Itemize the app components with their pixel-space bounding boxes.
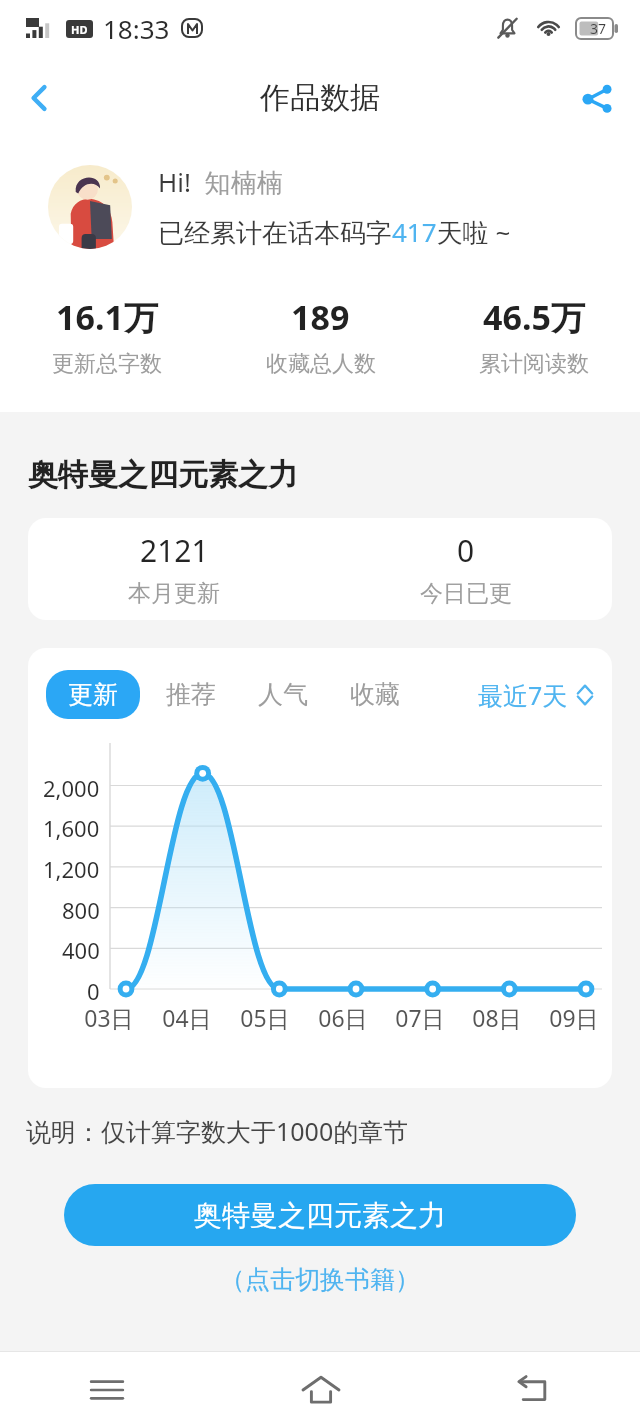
button[interactable]: Back xyxy=(427,1352,640,1428)
staticText: 189 xyxy=(291,294,350,340)
button[interactable]: 189 xyxy=(214,294,427,378)
staticText: 累计阅读数 xyxy=(479,350,589,378)
staticText: 奥特曼之四元素之力 xyxy=(28,456,298,494)
staticText: 04日 xyxy=(162,1002,212,1033)
button[interactable]: 人气 xyxy=(242,670,324,719)
button[interactable]: 46.5万 xyxy=(427,294,640,378)
staticText: 人气 xyxy=(258,679,308,710)
staticText: 推荐 xyxy=(166,679,216,710)
staticText: 1,600 xyxy=(43,813,100,843)
staticText: HD xyxy=(71,22,88,37)
button[interactable]: 0 xyxy=(320,530,612,608)
button[interactable]: 收藏 xyxy=(334,670,416,719)
button[interactable]: Back xyxy=(8,67,70,129)
staticText: 更新总字数 xyxy=(52,350,162,378)
button[interactable] xyxy=(48,165,132,249)
button[interactable]: Home xyxy=(214,1352,427,1428)
button[interactable]: 推荐 xyxy=(150,670,232,719)
staticText: 06日 xyxy=(318,1002,368,1033)
button[interactable]: Share xyxy=(566,67,628,129)
staticText: 2,000 xyxy=(43,773,100,803)
staticText: 18:33 xyxy=(103,11,170,46)
staticText: 说明：仅计算字数大于1000的章节 xyxy=(26,1114,409,1148)
button[interactable]: 16.1万 xyxy=(0,294,214,378)
staticText: 800 xyxy=(62,895,100,925)
button[interactable]: 奥特曼之四元素之力 xyxy=(64,1184,576,1246)
staticText: 16.1万 xyxy=(56,294,158,340)
staticText: 最近7天 xyxy=(478,678,568,712)
staticText: 奥特曼之四元素之力 xyxy=(194,1198,446,1233)
button[interactable]: 最近7天 xyxy=(478,678,594,712)
staticText: 46.5万 xyxy=(483,294,585,340)
staticText: 更新 xyxy=(68,679,118,710)
staticText: 05日 xyxy=(240,1002,290,1033)
staticText: 400 xyxy=(62,935,100,965)
staticText: Hi! 知楠楠 xyxy=(158,164,283,200)
button[interactable]: 2121 xyxy=(28,530,320,608)
button[interactable]: Recents xyxy=(0,1352,214,1428)
staticText: 0 xyxy=(87,976,100,1006)
staticText: 作品数据 xyxy=(260,79,380,117)
button[interactable]: 更新 xyxy=(46,670,140,719)
button[interactable]: （点击切换书籍） xyxy=(220,1264,420,1295)
staticText: 收藏 xyxy=(350,679,400,710)
staticText: 09日 xyxy=(549,1002,599,1033)
staticText: 收藏总人数 xyxy=(266,350,376,378)
staticText: 07日 xyxy=(395,1002,445,1033)
staticText: 0 xyxy=(457,530,475,571)
staticText: 已经累计在话本码字417天啦 ~ xyxy=(158,214,511,250)
staticText: 1,200 xyxy=(43,854,100,884)
staticText: 37 xyxy=(590,19,607,38)
staticText: 本月更新 xyxy=(128,579,220,608)
staticText: 2121 xyxy=(140,530,209,571)
staticText: 今日已更 xyxy=(420,579,512,608)
staticText: 03日 xyxy=(84,1002,134,1033)
staticText: 08日 xyxy=(472,1002,522,1033)
